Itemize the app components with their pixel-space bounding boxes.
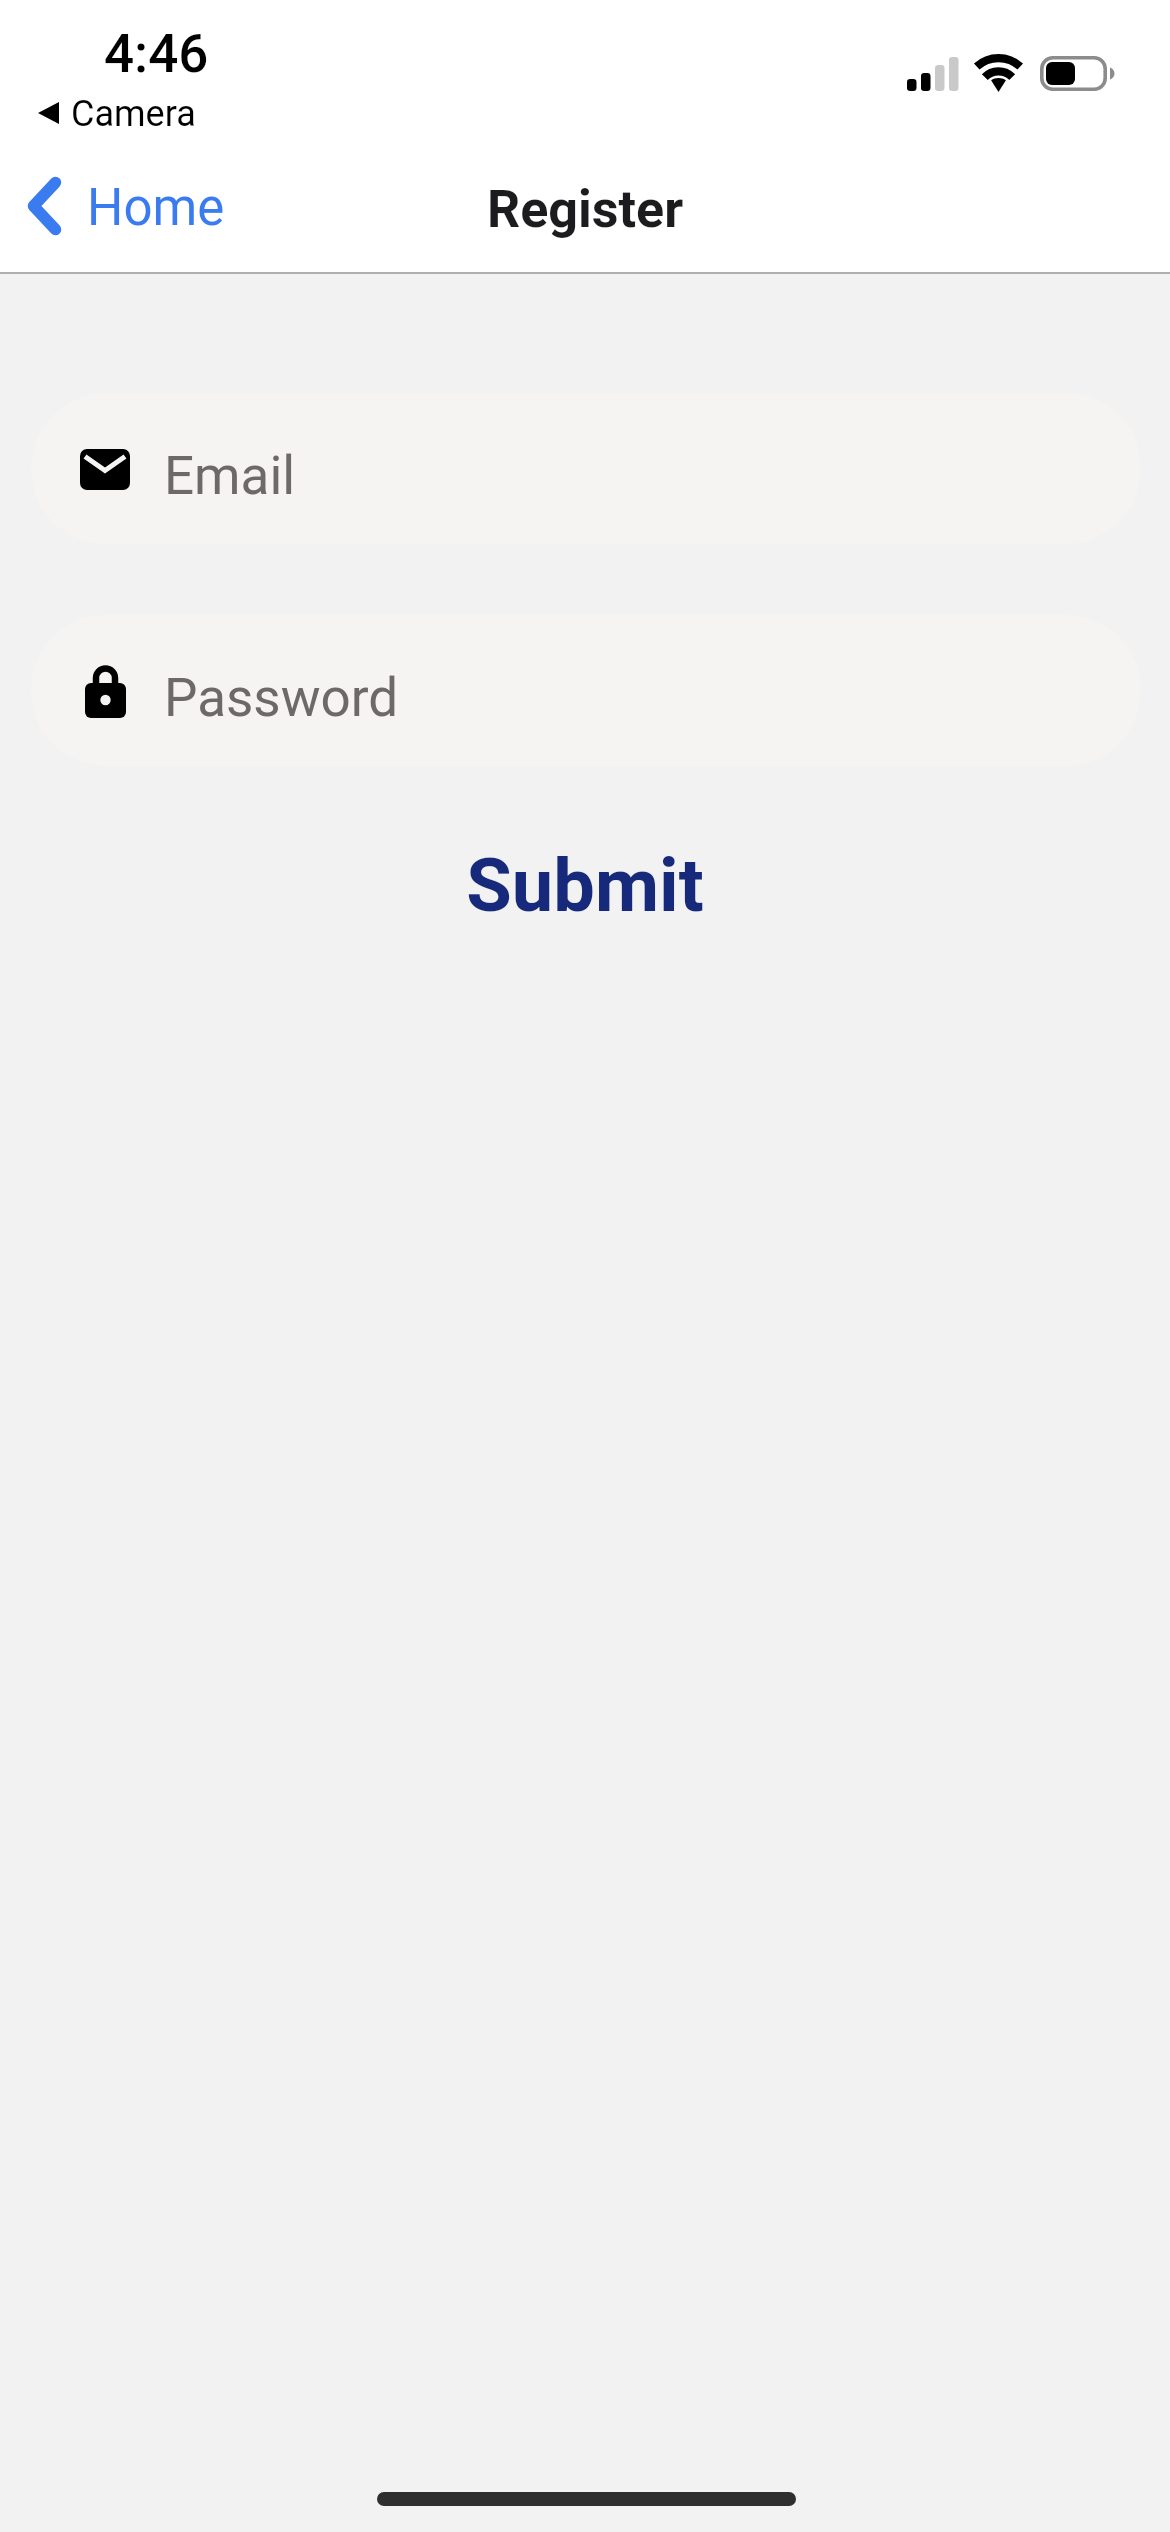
staticText: Register: [487, 179, 684, 240]
staticText: Password: [164, 667, 399, 729]
staticText: Camera: [71, 93, 196, 135]
staticText: Email: [164, 445, 296, 507]
button[interactable]: Back to Camera: [32, 88, 202, 138]
staticText: Submit: [466, 842, 704, 929]
button[interactable]: Email: [31, 393, 1141, 544]
staticText: Home: [87, 178, 225, 238]
button[interactable]: Password: [31, 615, 1141, 766]
button[interactable]: Submit: [0, 840, 1170, 930]
staticText: 4:46: [104, 23, 209, 85]
button[interactable]: Back to Home: [0, 147, 249, 265]
